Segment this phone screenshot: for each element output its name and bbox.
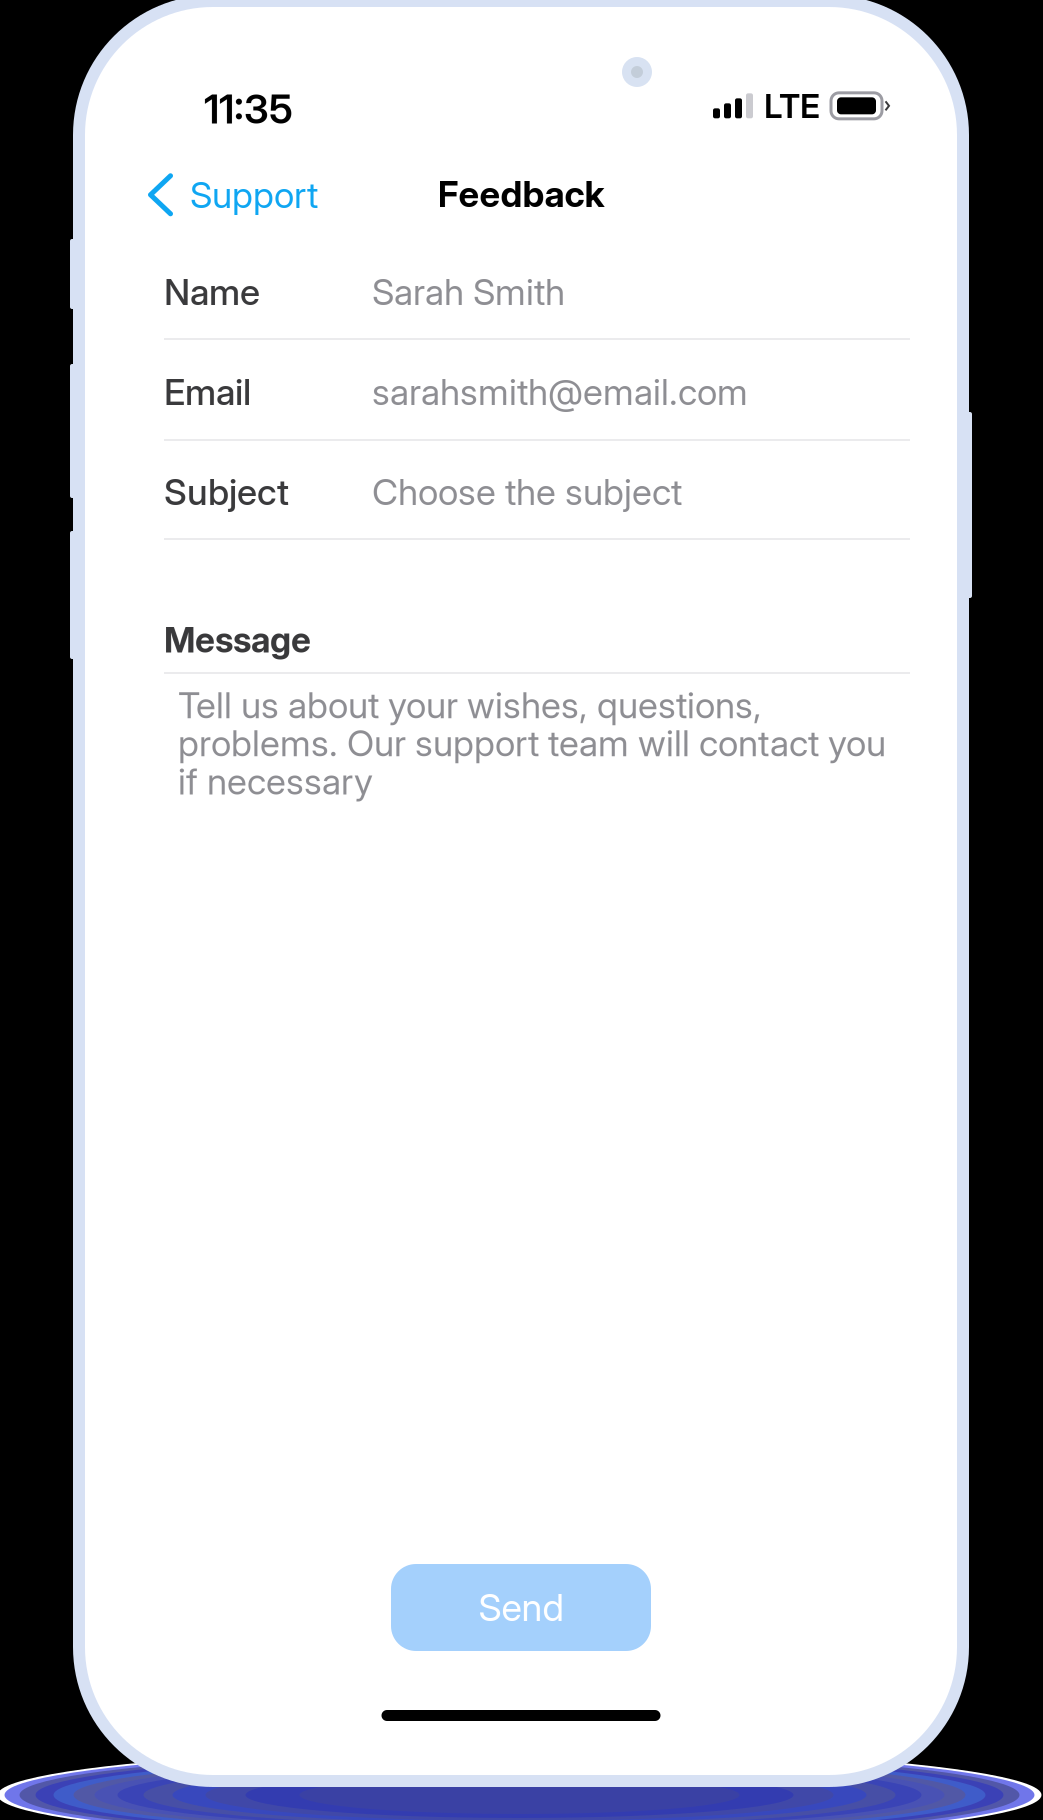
button[interactable]: Name bbox=[164, 242, 910, 342]
staticText: Support bbox=[190, 173, 318, 217]
staticText: Send bbox=[478, 1585, 563, 1630]
button[interactable]: Subject bbox=[164, 442, 910, 542]
button[interactable]: Email bbox=[164, 342, 910, 442]
button[interactable]: Send bbox=[391, 1564, 651, 1651]
staticText: sarahsmith@email.com bbox=[372, 370, 748, 414]
button[interactable]: Support bbox=[126, 163, 340, 227]
staticText: LTE bbox=[764, 86, 820, 126]
staticText: 11:35 bbox=[204, 85, 293, 133]
staticText: Tell us about your wishes, questions, pr… bbox=[178, 686, 886, 800]
staticText: Sarah Smith bbox=[372, 270, 565, 314]
staticText: Feedback bbox=[437, 172, 604, 216]
staticText: Subject bbox=[164, 470, 289, 514]
staticText: Email bbox=[164, 370, 251, 414]
staticText: Choose the subject bbox=[372, 470, 682, 514]
staticText: Name bbox=[164, 270, 260, 314]
staticText: Message bbox=[164, 619, 311, 661]
